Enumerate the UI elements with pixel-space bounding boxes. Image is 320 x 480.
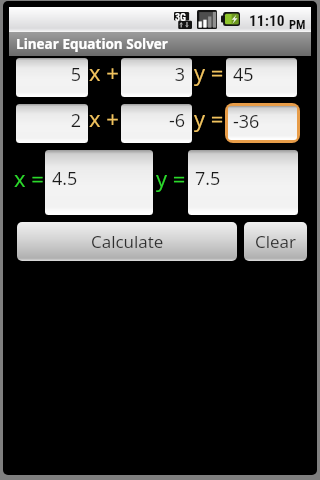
- staticText: -36: [233, 109, 260, 134]
- button[interactable]: 45: [226, 58, 297, 97]
- button[interactable]: 4.5: [45, 150, 153, 215]
- staticText: y =: [194, 103, 224, 133]
- staticText: x +: [89, 103, 119, 133]
- button[interactable]: 2: [16, 104, 88, 143]
- staticText: Clear: [255, 230, 296, 253]
- staticText: y =: [194, 57, 224, 87]
- staticText: 3G: [175, 12, 186, 24]
- staticText: Calculate: [91, 230, 164, 253]
- other: Signal strength: [197, 10, 217, 29]
- staticText: Linear Equation Solver: [16, 35, 168, 53]
- staticText: y =: [156, 163, 186, 193]
- button[interactable]: Linear Equation Solver: [9, 32, 311, 56]
- staticText: 2: [23, 108, 81, 133]
- button[interactable]: 7.5: [188, 150, 298, 215]
- staticText: x +: [89, 57, 119, 87]
- button[interactable]: 5: [16, 58, 88, 97]
- staticText: -6: [128, 108, 185, 133]
- button[interactable]: -36: [225, 103, 300, 143]
- staticText: x =: [14, 163, 44, 193]
- button[interactable]: 3: [121, 58, 192, 97]
- other: Battery charging: [221, 12, 240, 26]
- button[interactable]: -6: [121, 104, 192, 143]
- staticText: 7.5: [195, 166, 291, 191]
- staticText: 5: [23, 62, 81, 87]
- staticText: PM: [289, 17, 306, 32]
- staticText: 4.5: [52, 166, 146, 191]
- staticText: 45: [233, 62, 290, 87]
- button[interactable]: Calculate: [17, 222, 237, 261]
- staticText: 3: [128, 62, 185, 87]
- staticText: 11:10: [249, 12, 285, 30]
- button[interactable]: Clear: [244, 222, 307, 261]
- other: 3G network: [174, 10, 192, 29]
